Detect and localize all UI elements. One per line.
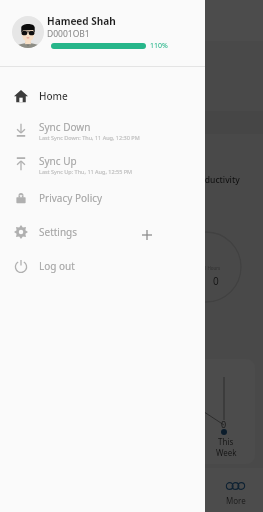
staticText: Sync Down bbox=[39, 120, 91, 134]
staticText: This bbox=[218, 436, 234, 447]
staticText: D0001OB1 bbox=[47, 28, 90, 40]
button[interactable]: Log out bbox=[0, 249, 205, 283]
staticText: Hi, Hameed bbox=[14, 56, 95, 75]
staticText: Your daily work summary bbox=[14, 86, 122, 98]
button[interactable]: More bbox=[203, 472, 263, 512]
staticText: Settings bbox=[39, 225, 78, 239]
staticText: 0 bbox=[213, 274, 219, 288]
staticText: 110% bbox=[150, 41, 168, 51]
button[interactable]: Menu bbox=[14, 13, 29, 28]
staticText: Privacy Policy bbox=[39, 191, 103, 205]
staticText: Hameed Shah bbox=[47, 14, 116, 28]
staticText: Dashboard bbox=[46, 12, 115, 30]
button[interactable]: Home bbox=[0, 79, 205, 113]
button[interactable]: Sync Down bbox=[0, 113, 205, 147]
button[interactable]: Settings bbox=[0, 215, 205, 249]
staticText: Sync Up bbox=[39, 154, 77, 168]
button[interactable]: 0 bbox=[8, 359, 255, 464]
staticText: Last Sync Down: Thu, 11 Aug, 12:30 PM bbox=[39, 134, 140, 141]
button[interactable]: Add bbox=[139, 227, 155, 243]
staticText: More bbox=[226, 495, 246, 506]
staticText: Productivity bbox=[191, 174, 240, 186]
staticText: 0 bbox=[221, 418, 227, 430]
staticText: Total Hours bbox=[196, 265, 221, 271]
staticText: Today, 11 Aug 2022 bbox=[14, 117, 87, 128]
staticText: Home bbox=[39, 89, 68, 103]
button[interactable]: Sync Up bbox=[0, 147, 205, 181]
staticText: Last Sync Up: Thu, 11 Aug, 12:55 PM bbox=[39, 168, 133, 175]
button[interactable]: Privacy Policy bbox=[0, 181, 205, 215]
staticText: Week bbox=[216, 447, 237, 458]
staticText: Log out bbox=[39, 259, 75, 273]
